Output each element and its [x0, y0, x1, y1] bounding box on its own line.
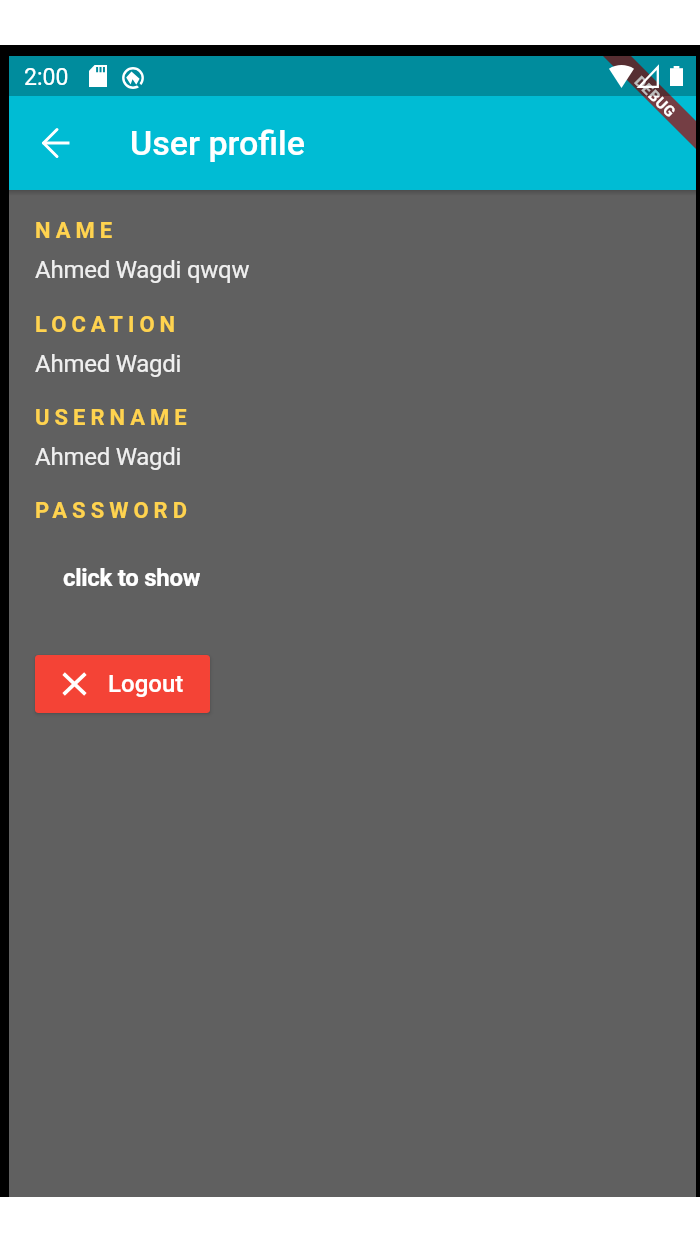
staticText: LOCATION — [35, 312, 181, 338]
button[interactable]: Logout — [35, 655, 210, 713]
staticText: click to show — [63, 564, 200, 592]
button[interactable]: Back — [28, 96, 84, 190]
staticText: Ahmed Wagdi qwqw — [35, 256, 250, 284]
staticText: User profile — [130, 123, 305, 163]
staticText: Logout — [108, 670, 184, 698]
staticText: PASSWORD — [35, 498, 192, 524]
staticText: 2:00 — [24, 64, 69, 91]
staticText: Ahmed Wagdi — [35, 350, 182, 378]
staticText: NAME — [35, 218, 118, 244]
staticText: USERNAME — [35, 405, 192, 431]
button[interactable]: click to show — [47, 550, 216, 606]
staticText: Ahmed Wagdi — [35, 443, 182, 471]
